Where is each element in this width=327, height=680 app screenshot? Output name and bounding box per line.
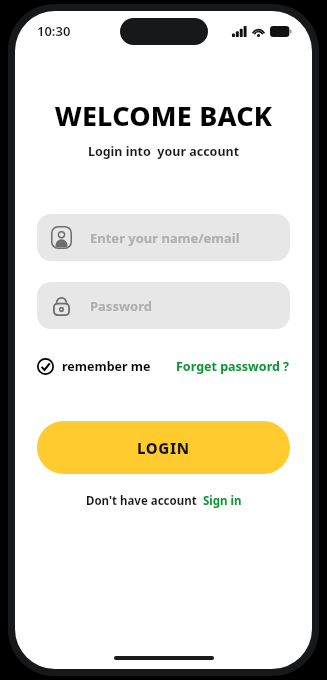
staticText: Don't have account — [86, 493, 197, 509]
staticText: WELCOME BACK — [37, 97, 290, 134]
button[interactable]: Sign in — [203, 493, 242, 509]
button[interactable]: Remember me checkbox — [37, 355, 151, 378]
button[interactable]: Forget password ? — [176, 355, 290, 378]
staticText: Forget password ? — [176, 358, 290, 375]
button[interactable]: LOGIN — [37, 421, 290, 474]
staticText: remember me — [62, 358, 151, 375]
staticText: Login into your account — [37, 143, 290, 160]
staticText: Password — [90, 297, 152, 315]
button[interactable]: Enter your name/email — [37, 214, 290, 261]
staticText: Sign in — [203, 493, 242, 509]
staticText: 10:30 — [37, 22, 71, 40]
other: Remember me checkbox — [37, 358, 54, 375]
staticText: LOGIN — [137, 438, 190, 458]
button[interactable]: Password — [37, 282, 290, 329]
staticText: Enter your name/email — [90, 229, 240, 247]
